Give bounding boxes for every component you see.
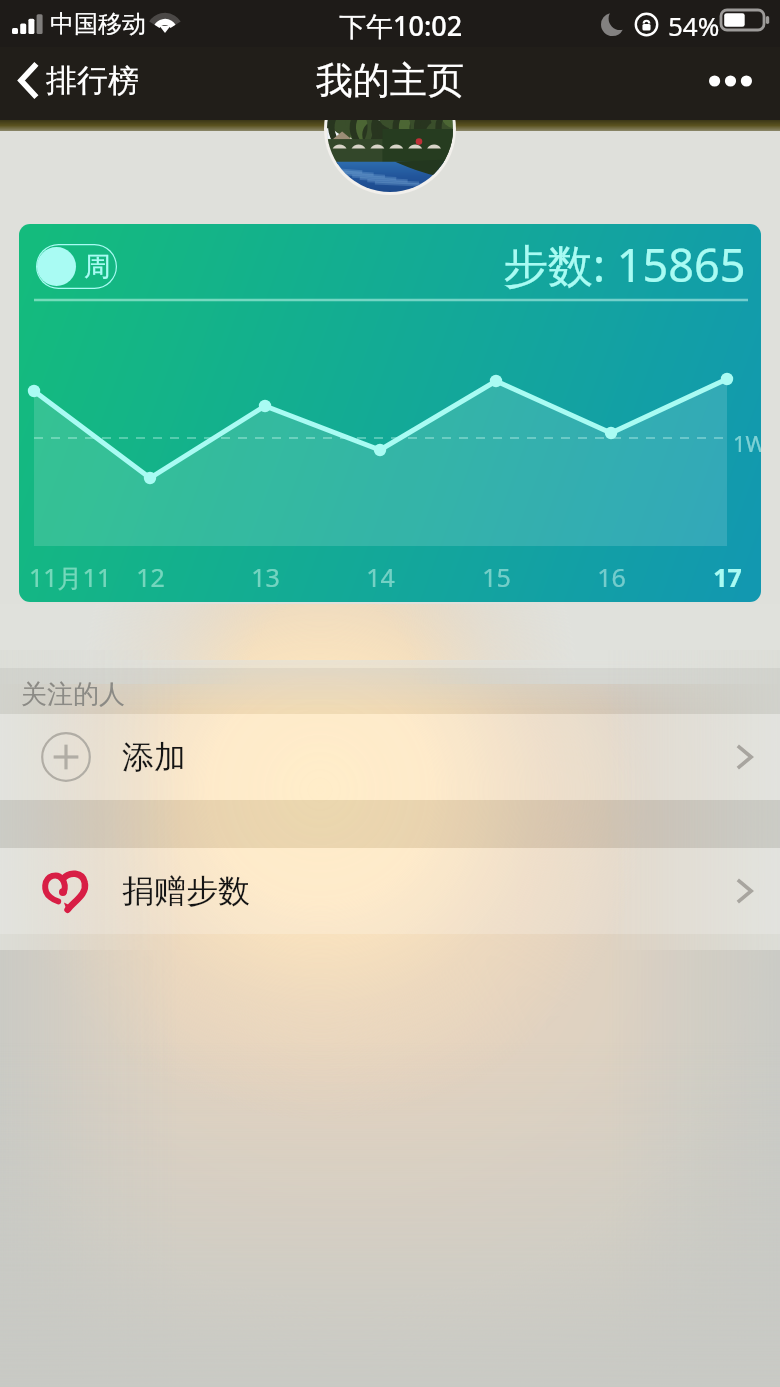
staticText: 捐赠步数	[122, 871, 250, 911]
button[interactable]: 周	[19, 224, 761, 602]
staticText: 排行榜	[46, 61, 139, 100]
staticText: 我的主页	[316, 57, 464, 104]
staticText: 17	[713, 560, 742, 594]
staticText: 11月11	[29, 560, 112, 594]
staticText: 周	[84, 250, 111, 284]
staticText: 12	[136, 560, 165, 594]
staticText: 1W	[733, 428, 761, 458]
staticText: 下午10:02	[339, 7, 463, 44]
staticText: 添加	[122, 737, 186, 777]
button[interactable]: 周	[36, 244, 117, 289]
staticText: 关注的人	[21, 678, 125, 711]
button[interactable]: More options	[694, 45, 766, 117]
staticText: 16	[597, 560, 626, 594]
button[interactable]: 捐赠步数	[0, 848, 780, 934]
button[interactable]: 排行榜	[0, 61, 151, 100]
staticText: 15	[482, 560, 511, 594]
staticText: 54%	[668, 8, 720, 43]
button[interactable]: 添加	[0, 714, 780, 800]
staticText: 步数: 15865	[503, 234, 746, 295]
staticText: 14	[366, 560, 395, 594]
button[interactable]: Profile avatar	[324, 63, 456, 195]
staticText: 中国移动	[50, 9, 146, 39]
staticText: 13	[251, 560, 280, 594]
